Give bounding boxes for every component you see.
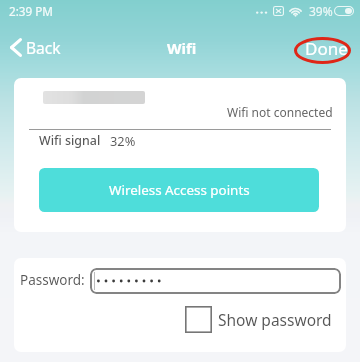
button[interactable]: Wireless Access points (39, 168, 319, 212)
button[interactable]: Show password (185, 306, 332, 333)
staticText: Wireless Access points (109, 181, 250, 199)
staticText: Wifi not connected (227, 104, 333, 120)
staticText: 32% (110, 132, 136, 149)
staticText: Wifi signal (39, 132, 101, 149)
staticText: Wifi (167, 38, 197, 58)
staticText: Password: (20, 271, 85, 289)
button[interactable]: Back (2, 33, 71, 62)
staticText: Done (305, 37, 348, 60)
button[interactable]: Password field (90, 268, 341, 294)
staticText: Back (26, 37, 61, 58)
staticText: 39% (309, 3, 333, 19)
button[interactable]: Done (296, 33, 357, 64)
staticText: Show password (218, 309, 332, 330)
staticText: 2:39 PM (9, 3, 53, 19)
